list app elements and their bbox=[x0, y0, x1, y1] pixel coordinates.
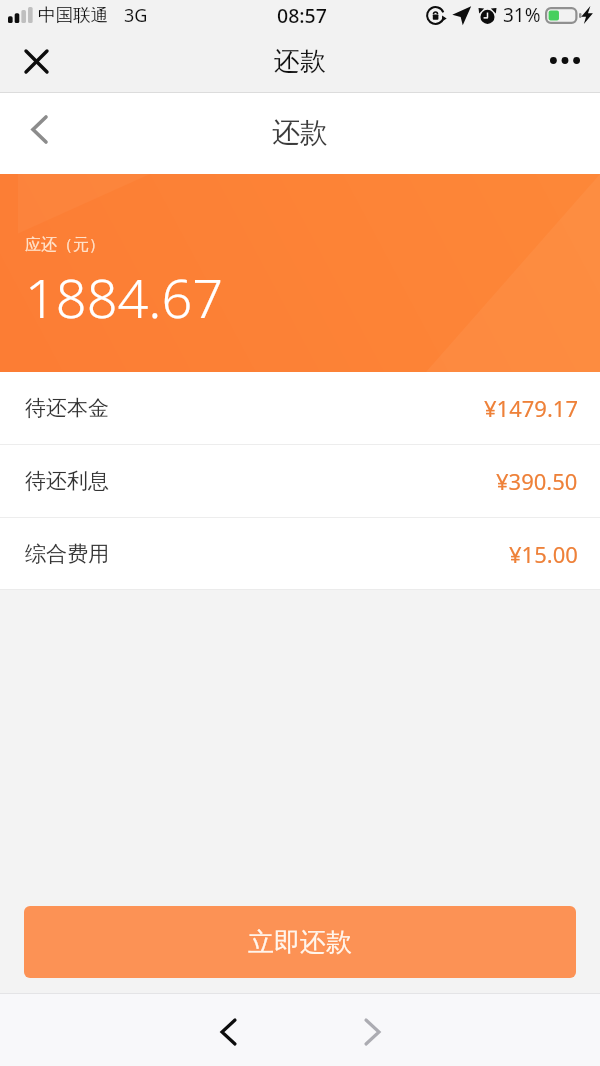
button[interactable]: 待还利息 bbox=[0, 445, 600, 517]
button[interactable]: 综合费用 bbox=[0, 518, 600, 590]
staticText: 3G bbox=[124, 3, 148, 28]
staticText: ¥390.50 bbox=[496, 466, 578, 496]
staticText: ¥1479.17 bbox=[484, 393, 578, 423]
button[interactable]: Back bbox=[11, 101, 67, 157]
staticText: 中国联通 bbox=[38, 4, 108, 26]
staticText: ¥15.00 bbox=[509, 539, 578, 569]
staticText: 还款 bbox=[274, 45, 326, 78]
staticText: 31% bbox=[503, 2, 541, 28]
staticText: 立即还款 bbox=[248, 926, 352, 959]
button[interactable]: Forward bbox=[343, 1003, 401, 1061]
staticText: 1884.67 bbox=[25, 260, 224, 334]
button[interactable]: Back bbox=[199, 1003, 257, 1061]
staticText: 08:57 bbox=[277, 2, 327, 29]
staticText: 还款 bbox=[272, 115, 328, 150]
staticText: 综合费用 bbox=[25, 541, 109, 567]
staticText: 应还（元） bbox=[25, 235, 105, 255]
button[interactable]: 待还本金 bbox=[0, 372, 600, 444]
button[interactable]: Close bbox=[12, 37, 61, 86]
staticText: 待还利息 bbox=[25, 468, 109, 494]
button[interactable]: 立即还款 bbox=[24, 906, 576, 978]
button[interactable]: More options bbox=[539, 34, 591, 86]
staticText: 待还本金 bbox=[25, 395, 109, 421]
